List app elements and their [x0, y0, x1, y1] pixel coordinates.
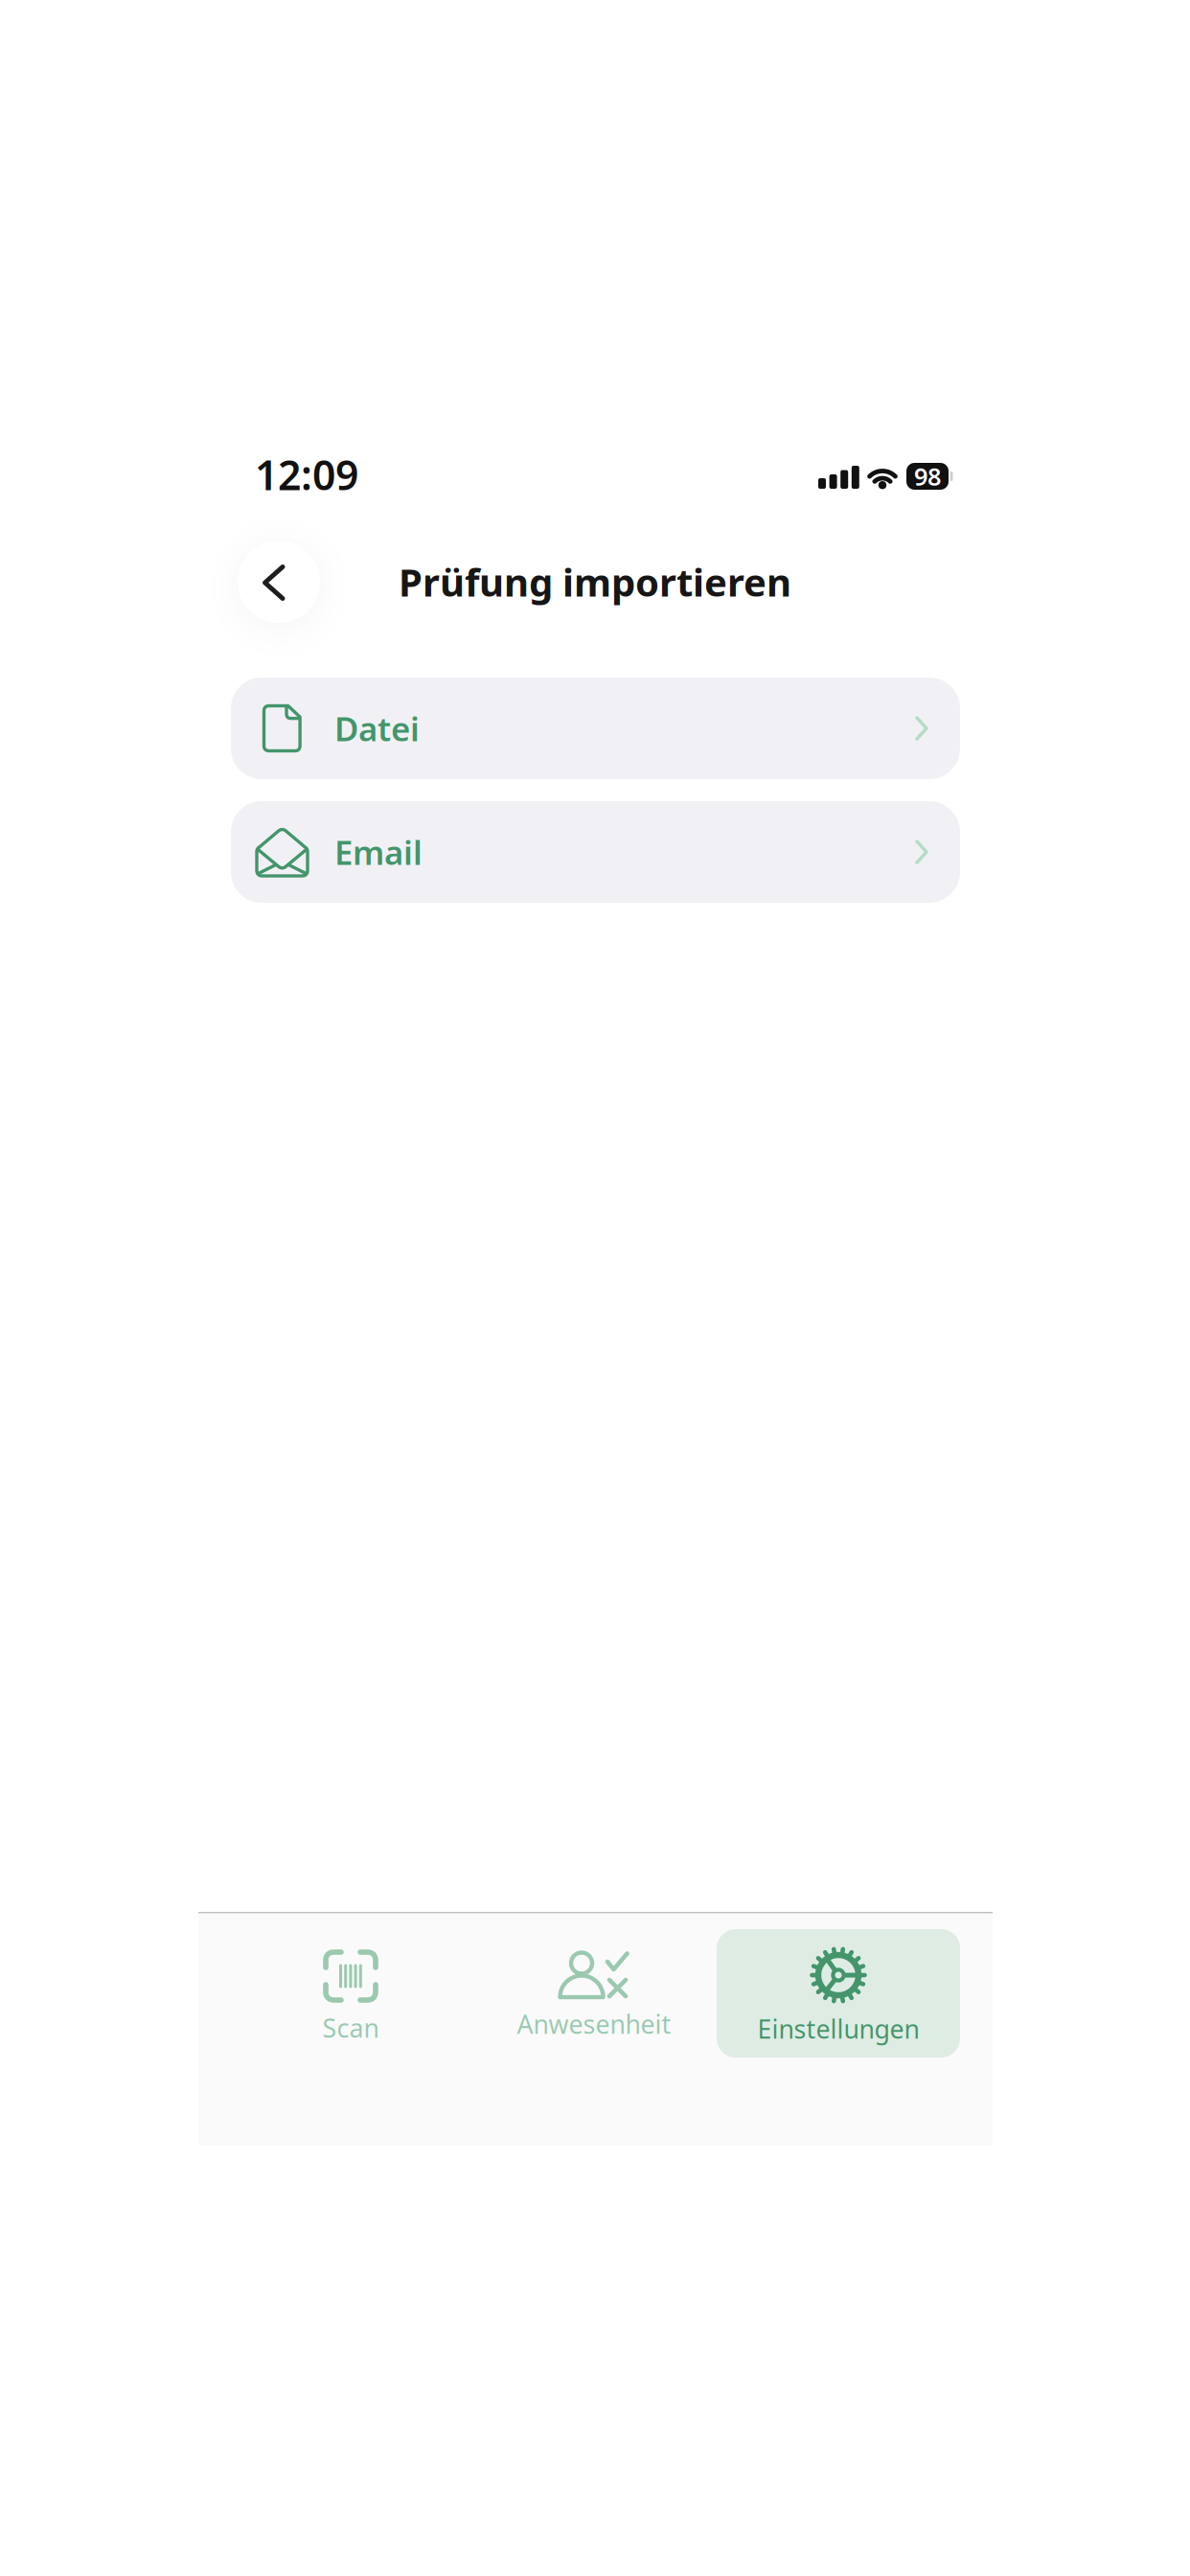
button[interactable]: Email: [231, 801, 960, 903]
staticText: Scan: [322, 2011, 379, 2045]
staticText: Prüfung importieren: [399, 556, 791, 607]
button[interactable]: Datei: [231, 678, 960, 779]
button[interactable]: Einstellungen: [717, 1929, 960, 2058]
button[interactable]: Anwesenheit: [472, 1929, 716, 2058]
staticText: 98: [914, 460, 941, 492]
staticText: Einstellungen: [757, 2012, 919, 2046]
button[interactable]: [238, 540, 320, 623]
button[interactable]: Scan: [229, 1929, 472, 2058]
staticText: Datei: [334, 706, 420, 750]
staticText: Email: [334, 830, 423, 874]
staticText: Anwesenheit: [517, 2007, 671, 2041]
staticText: 12:09: [255, 447, 358, 502]
